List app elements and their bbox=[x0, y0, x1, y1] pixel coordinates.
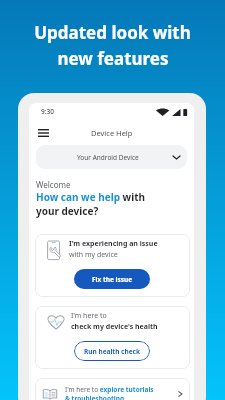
staticText: I'm experiencing an issue bbox=[69, 239, 158, 249]
button[interactable]: Fix the issue bbox=[74, 269, 150, 289]
button[interactable]: I'm here to explore tutorials & troubles… bbox=[35, 378, 190, 400]
staticText: Run health check bbox=[84, 347, 140, 356]
staticText: new features bbox=[57, 47, 169, 70]
staticText: Updated look with bbox=[34, 21, 191, 44]
button[interactable]: Run health check bbox=[74, 341, 150, 361]
staticText: Your Android Device bbox=[77, 153, 139, 162]
staticText: Fix the issue bbox=[92, 275, 133, 284]
staticText: I'm here to bbox=[71, 311, 107, 321]
button[interactable]: Your Android Device bbox=[36, 145, 187, 169]
staticText: How can we help with your device? bbox=[36, 190, 145, 218]
staticText: I'm here to explore tutorials & troubles… bbox=[65, 385, 178, 400]
staticText: check my device's health bbox=[71, 322, 158, 332]
staticText: with my device bbox=[69, 250, 118, 260]
staticText: 9:30 bbox=[41, 107, 54, 116]
staticText: Welcome bbox=[36, 179, 71, 190]
button[interactable]: Menu bbox=[33, 123, 53, 143]
button[interactable]: I'm here to bbox=[35, 306, 190, 369]
staticText: Device Help bbox=[91, 128, 133, 138]
button[interactable]: I'm experiencing an issue bbox=[35, 234, 190, 297]
